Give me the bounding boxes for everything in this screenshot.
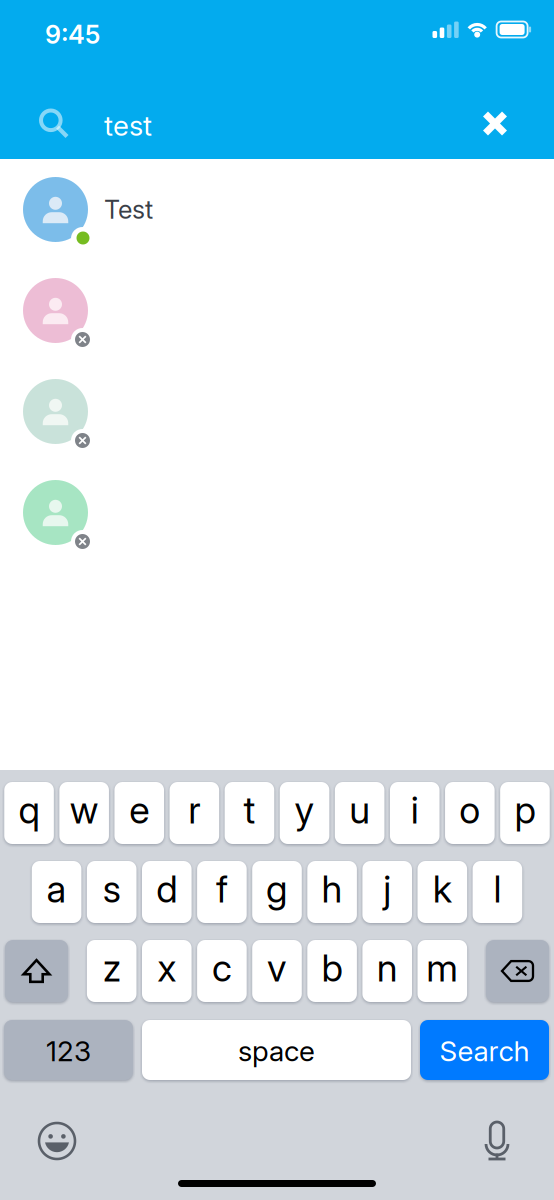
staticText: x bbox=[157, 945, 176, 991]
button[interactable]: w bbox=[59, 782, 109, 844]
button[interactable]: o bbox=[445, 782, 495, 844]
button[interactable]: y bbox=[280, 782, 329, 844]
button[interactable]: Delete bbox=[486, 940, 549, 1002]
button[interactable]: 123 bbox=[4, 1020, 133, 1080]
button[interactable]: b bbox=[307, 940, 357, 1002]
staticText: r bbox=[188, 787, 200, 833]
button[interactable]: f bbox=[197, 861, 247, 923]
button[interactable] bbox=[0, 462, 554, 563]
staticText: p bbox=[514, 787, 535, 833]
staticText: i bbox=[411, 787, 419, 833]
staticText: j bbox=[383, 866, 391, 912]
button[interactable]: v bbox=[252, 940, 302, 1002]
staticText: d bbox=[156, 866, 177, 912]
staticText: a bbox=[47, 866, 67, 912]
button[interactable]: Dictate bbox=[468, 1114, 526, 1168]
staticText: m bbox=[426, 945, 458, 991]
staticText: Search bbox=[439, 1034, 529, 1068]
staticText: Test bbox=[104, 194, 153, 225]
staticText: o bbox=[459, 787, 480, 833]
staticText: n bbox=[377, 945, 398, 991]
staticText: l bbox=[493, 866, 501, 912]
button[interactable] bbox=[0, 260, 554, 361]
staticText: 123 bbox=[46, 1034, 91, 1068]
button[interactable]: c bbox=[197, 940, 247, 1002]
button[interactable]: i bbox=[390, 782, 439, 844]
staticText: 9:45 bbox=[45, 19, 100, 50]
button[interactable]: Search bbox=[27, 87, 81, 159]
staticText: z bbox=[103, 945, 121, 991]
button[interactable]: d bbox=[142, 861, 192, 923]
button[interactable]: n bbox=[362, 940, 412, 1002]
button[interactable]: r bbox=[169, 782, 219, 844]
button[interactable]: z bbox=[87, 940, 136, 1002]
button[interactable]: l bbox=[473, 861, 522, 923]
staticText: f bbox=[216, 866, 228, 912]
button[interactable]: a bbox=[32, 861, 81, 923]
button[interactable]: Search bbox=[420, 1020, 549, 1080]
staticText: g bbox=[266, 866, 288, 912]
staticText: h bbox=[322, 866, 343, 912]
staticText: u bbox=[349, 787, 370, 833]
staticText: test bbox=[104, 109, 152, 142]
button[interactable]: p bbox=[500, 782, 550, 844]
staticText: w bbox=[70, 787, 99, 833]
button[interactable]: j bbox=[362, 861, 412, 923]
button[interactable]: e bbox=[114, 782, 164, 844]
staticText: space bbox=[238, 1034, 315, 1068]
button[interactable]: h bbox=[307, 861, 357, 923]
button[interactable]: m bbox=[417, 940, 467, 1002]
button[interactable]: t bbox=[225, 782, 274, 844]
staticText: b bbox=[322, 945, 343, 991]
staticText: q bbox=[18, 787, 39, 833]
button[interactable]: Test bbox=[0, 159, 554, 260]
button[interactable]: x bbox=[142, 940, 192, 1002]
button[interactable]: u bbox=[335, 782, 384, 844]
staticText: t bbox=[243, 787, 255, 833]
staticText: s bbox=[103, 866, 121, 912]
button[interactable]: space bbox=[142, 1020, 411, 1080]
staticText: c bbox=[212, 945, 232, 991]
button[interactable] bbox=[0, 361, 554, 462]
button[interactable]: Emoji bbox=[28, 1114, 86, 1168]
button[interactable]: g bbox=[252, 861, 302, 923]
button[interactable]: q bbox=[4, 782, 54, 844]
button[interactable]: Shift bbox=[5, 940, 68, 1002]
staticText: v bbox=[267, 945, 287, 991]
button[interactable]: s bbox=[87, 861, 136, 923]
staticText: e bbox=[129, 787, 149, 833]
button[interactable]: Clear search bbox=[468, 87, 522, 159]
staticText: k bbox=[433, 866, 452, 912]
staticText: y bbox=[294, 787, 314, 833]
button[interactable]: k bbox=[417, 861, 467, 923]
